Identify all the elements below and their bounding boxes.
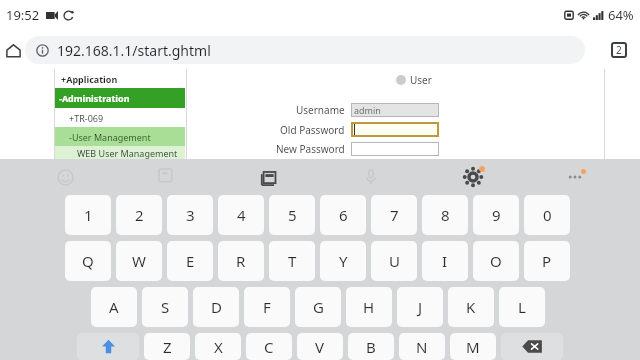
staticText: 4 xyxy=(237,205,246,225)
staticText: 192.168.1.1/start.ghtml xyxy=(57,41,211,60)
button[interactable]: 4 xyxy=(218,195,264,235)
button[interactable]: V xyxy=(297,333,343,360)
staticText: 2 xyxy=(616,43,622,57)
button[interactable]: 7 xyxy=(371,195,417,235)
staticText: U xyxy=(389,251,400,271)
staticText: S xyxy=(161,297,170,317)
button[interactable]: 6 xyxy=(320,195,366,235)
button[interactable]: 3 xyxy=(167,195,213,235)
staticText: K xyxy=(466,297,476,317)
staticText: D xyxy=(211,297,222,317)
button[interactable]: 1 xyxy=(65,195,111,235)
button[interactable]: +Application xyxy=(55,69,185,88)
button[interactable]: I xyxy=(422,241,468,281)
staticText: M xyxy=(466,337,480,357)
staticText: New Password xyxy=(276,142,345,156)
staticText: F xyxy=(263,297,271,317)
button[interactable]: 9 xyxy=(473,195,519,235)
button[interactable]: -User Management xyxy=(55,127,185,146)
button[interactable]: L xyxy=(499,287,545,327)
button[interactable]: T xyxy=(269,241,315,281)
button[interactable]: More options xyxy=(524,161,626,193)
button[interactable]: Q xyxy=(65,241,111,281)
button[interactable]: E xyxy=(167,241,213,281)
staticText: V xyxy=(315,337,325,357)
staticText: admin xyxy=(354,104,381,116)
button[interactable]: WEB User Management xyxy=(55,146,185,159)
staticText: +Application xyxy=(61,73,118,85)
staticText: +TR-069 xyxy=(69,112,104,124)
staticText: 5 xyxy=(288,205,297,225)
staticText: P xyxy=(542,251,552,271)
staticText: T xyxy=(288,251,297,271)
button[interactable]: H xyxy=(346,287,392,327)
staticText: I xyxy=(442,251,448,271)
button[interactable]: +TR-069 xyxy=(55,108,185,127)
staticText: 6 xyxy=(339,205,348,225)
button[interactable]: -Administration xyxy=(55,88,185,108)
staticText: 7 xyxy=(390,205,399,225)
staticText: H xyxy=(363,297,375,317)
button[interactable]: Tabs xyxy=(608,39,630,61)
button[interactable]: A xyxy=(91,287,137,327)
button[interactable]: 5 xyxy=(269,195,315,235)
button[interactable]: Y xyxy=(320,241,366,281)
button[interactable]: N xyxy=(399,333,445,360)
staticText: 19:52 xyxy=(6,6,40,24)
button[interactable]: Settings xyxy=(422,161,524,193)
button[interactable]: Shift xyxy=(77,333,139,360)
button[interactable]: 192.168.1.1/start.ghtml xyxy=(25,36,585,64)
staticText: WEB User Management xyxy=(77,147,178,159)
staticText: A xyxy=(109,297,119,317)
button[interactable]: F xyxy=(244,287,290,327)
button[interactable]: Home xyxy=(0,37,26,63)
staticText: Old Password xyxy=(280,123,345,137)
staticText: Username xyxy=(296,103,345,117)
staticText: E xyxy=(186,251,195,271)
button[interactable]: K xyxy=(448,287,494,327)
staticText: G xyxy=(313,297,324,317)
staticText: Z xyxy=(163,337,172,357)
button[interactable]: D xyxy=(193,287,239,327)
button[interactable]: U xyxy=(371,241,417,281)
button[interactable]: B xyxy=(348,333,394,360)
staticText: W xyxy=(132,251,146,271)
staticText: 64% xyxy=(608,6,634,24)
staticText: N xyxy=(416,337,428,357)
button[interactable]: Clipboard xyxy=(218,161,320,193)
button[interactable]: C xyxy=(246,333,292,360)
button[interactable]: R xyxy=(218,241,264,281)
button[interactable]: 8 xyxy=(422,195,468,235)
button[interactable]: J xyxy=(397,287,443,327)
staticText: -User Management xyxy=(69,131,151,143)
staticText: User xyxy=(410,73,432,87)
staticText: Q xyxy=(82,251,94,271)
button[interactable]: M xyxy=(450,333,496,360)
button[interactable]: Z xyxy=(144,333,190,360)
button[interactable]: O xyxy=(473,241,519,281)
button[interactable]: 2 xyxy=(116,195,162,235)
staticText: R xyxy=(236,251,246,271)
staticText: O xyxy=(490,251,502,271)
staticText: 8 xyxy=(441,205,450,225)
staticText: 3 xyxy=(186,205,195,225)
staticText: Y xyxy=(339,251,348,271)
button[interactable]: 0 xyxy=(524,195,570,235)
staticText: 1 xyxy=(84,205,93,225)
staticText: 9 xyxy=(492,205,501,225)
button[interactable]: P xyxy=(524,241,570,281)
button[interactable]: S xyxy=(142,287,188,327)
staticText: -Administration xyxy=(59,92,130,104)
button[interactable]: Backspace xyxy=(501,333,563,360)
staticText: J xyxy=(418,297,423,317)
staticText: 0 xyxy=(543,205,552,225)
staticText: 2 xyxy=(135,205,144,225)
button[interactable]: G xyxy=(295,287,341,327)
staticText: X xyxy=(214,337,223,357)
staticText: L xyxy=(518,297,526,317)
button[interactable]: W xyxy=(116,241,162,281)
button[interactable]: X xyxy=(195,333,241,360)
